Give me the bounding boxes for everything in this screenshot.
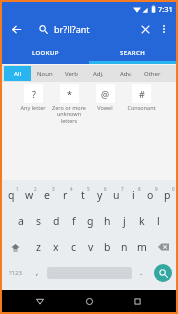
staticText: b: [104, 240, 111, 254]
staticText: o: [147, 188, 154, 202]
button[interactable]: Verb: [58, 65, 85, 82]
staticText: 6: [104, 186, 107, 192]
staticText: 5: [87, 186, 90, 192]
staticText: l: [157, 214, 160, 228]
staticText: 9: [155, 186, 158, 192]
button[interactable]: v: [82, 234, 99, 260]
button[interactable]: d: [48, 208, 65, 234]
button[interactable]: All: [4, 65, 31, 82]
button[interactable]: Recent apps: [127, 291, 147, 311]
staticText: 1: [16, 186, 19, 192]
button[interactable]: ?123: [2, 260, 28, 286]
staticText: x: [53, 240, 59, 254]
button[interactable]: Back: [6, 19, 26, 39]
staticText: k: [139, 214, 145, 228]
staticText: 7: [121, 186, 124, 192]
button[interactable]: j: [116, 208, 133, 234]
button[interactable]: 2: [20, 182, 38, 208]
staticText: 3: [52, 186, 55, 192]
staticText: t: [81, 188, 85, 202]
staticText: 0: [172, 186, 175, 192]
button[interactable]: k: [133, 208, 150, 234]
staticText: ?: [32, 88, 36, 100]
staticText: h: [104, 214, 111, 228]
button[interactable]: m: [133, 234, 150, 260]
button[interactable]: 9: [142, 182, 159, 208]
staticText: Consonant: [127, 104, 156, 111]
button[interactable]: Search: [34, 20, 53, 39]
staticText: #: [139, 88, 145, 100]
staticText: y: [97, 188, 103, 202]
staticText: s: [36, 214, 42, 228]
button[interactable]: 3: [38, 182, 56, 208]
staticText: Any letter: [20, 104, 46, 111]
button[interactable]: Clear query: [135, 19, 155, 39]
button[interactable]: Adv.: [112, 65, 139, 82]
button[interactable]: a: [12, 208, 30, 234]
button[interactable]: Adj.: [85, 65, 112, 82]
button[interactable]: SEARCH: [89, 43, 176, 64]
button[interactable]: @: [87, 84, 123, 111]
staticText: LOOKUP: [32, 49, 59, 57]
button[interactable]: h: [99, 208, 116, 234]
button[interactable]: 6: [91, 182, 108, 208]
staticText: c: [71, 240, 77, 254]
staticText: Adj.: [93, 70, 104, 78]
button[interactable]: z: [29, 234, 47, 260]
staticText: br?ll?ant: [54, 23, 90, 35]
button[interactable]: 4: [56, 182, 74, 208]
staticText: w: [25, 188, 34, 202]
staticText: 2: [34, 186, 37, 192]
staticText: v: [88, 240, 94, 254]
staticText: Verb: [65, 70, 79, 78]
button[interactable]: 7: [108, 182, 125, 208]
staticText: g: [87, 214, 94, 228]
button[interactable]: More options: [155, 20, 173, 38]
button[interactable]: s: [30, 208, 48, 234]
staticText: Zero or more unknown letters: [52, 104, 86, 125]
staticText: Vowel: [97, 104, 113, 111]
button[interactable]: 8: [125, 182, 142, 208]
staticText: ?123: [9, 269, 22, 277]
button[interactable]: LOOKUP: [2, 43, 89, 64]
button[interactable]: c: [65, 234, 82, 260]
button[interactable]: 1: [2, 182, 20, 208]
button[interactable]: x: [47, 234, 65, 260]
staticText: p: [164, 188, 171, 202]
button[interactable]: 5: [74, 182, 91, 208]
button[interactable]: ,: [28, 260, 47, 286]
staticText: a: [18, 214, 24, 228]
button[interactable]: *: [51, 84, 87, 125]
button[interactable]: .: [132, 260, 150, 286]
button[interactable]: n: [116, 234, 133, 260]
staticText: n: [121, 240, 128, 254]
button[interactable]: 0: [159, 182, 176, 208]
button[interactable]: Back: [30, 291, 50, 311]
staticText: 8: [138, 186, 141, 192]
staticText: Noun: [37, 70, 53, 78]
staticText: f: [72, 214, 76, 228]
staticText: *: [67, 88, 72, 100]
staticText: u: [113, 188, 120, 202]
button[interactable]: g: [82, 208, 99, 234]
staticText: m: [137, 240, 147, 254]
staticText: z: [36, 240, 41, 254]
button[interactable]: l: [150, 208, 167, 234]
button[interactable]: Noun: [31, 65, 58, 82]
button[interactable]: #: [123, 84, 159, 111]
staticText: q: [8, 188, 15, 202]
button[interactable]: b: [99, 234, 116, 260]
button[interactable]: ?: [15, 84, 51, 111]
staticText: @: [101, 88, 110, 100]
staticText: Adv.: [120, 70, 132, 78]
button[interactable]: Home: [79, 291, 99, 311]
button[interactable]: Backspace: [150, 234, 176, 260]
button[interactable]: Search: [154, 264, 172, 282]
staticText: 4: [70, 186, 73, 192]
staticText: .: [140, 266, 143, 277]
button[interactable]: Shift: [2, 234, 29, 260]
button[interactable]: Other: [139, 65, 166, 82]
staticText: 7:31: [158, 4, 173, 14]
button[interactable]: f: [65, 208, 82, 234]
